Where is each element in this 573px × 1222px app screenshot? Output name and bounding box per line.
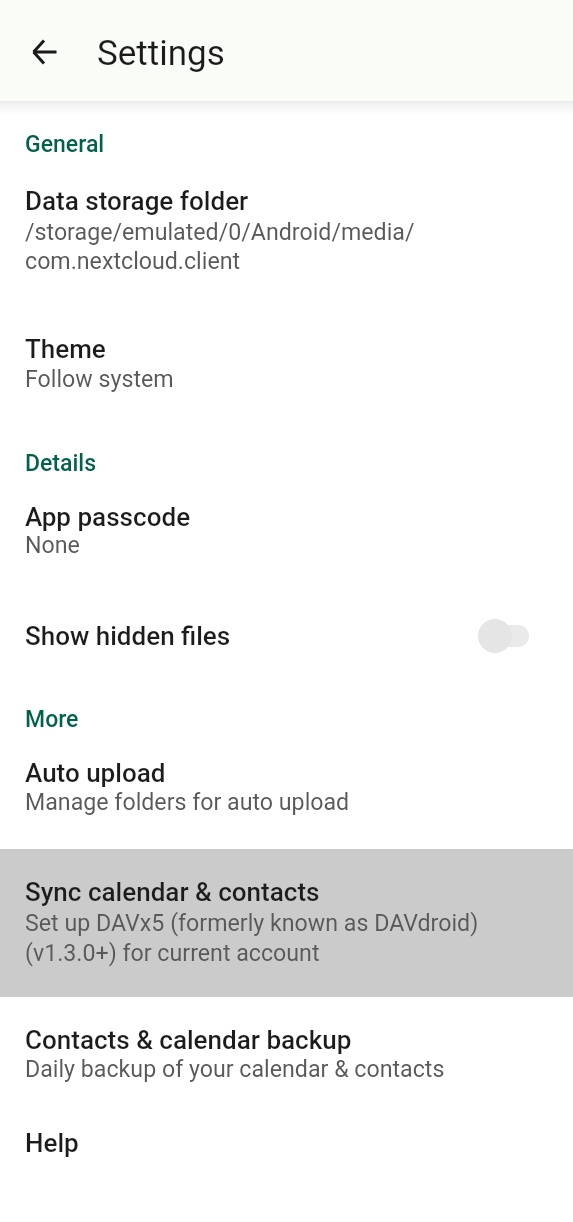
staticText: Show hidden files (25, 621, 231, 651)
staticText: None (25, 531, 80, 558)
button[interactable]: Theme (0, 320, 573, 404)
staticText: More (25, 706, 79, 733)
staticText: Sync calendar & contacts (25, 877, 320, 907)
staticText: com.nextcloud.client (25, 247, 241, 274)
button[interactable]: Show hidden files (0, 600, 573, 690)
staticText: Theme (25, 334, 106, 364)
button[interactable]: Sync calendar and contacts (0, 849, 573, 997)
staticText: General (25, 131, 105, 158)
button[interactable]: Data storage folder (0, 172, 573, 284)
button[interactable]: General section (0, 110, 573, 183)
staticText: (v1.3.0+) for current account (25, 939, 320, 966)
staticText: Auto upload (25, 758, 166, 788)
staticText: Daily backup of your calendar & contacts (25, 1055, 445, 1082)
button[interactable]: Auto upload (0, 746, 573, 828)
staticText: Data storage folder (25, 186, 249, 216)
button[interactable]: More section (0, 692, 573, 746)
button[interactable]: Back (12, 19, 77, 84)
staticText: App passcode (25, 502, 191, 532)
staticText: Follow system (25, 365, 174, 392)
button[interactable]: Details section (0, 436, 573, 488)
button[interactable]: Contacts and calendar backup (0, 1010, 573, 1094)
button[interactable]: Show hidden files toggle (459, 600, 555, 672)
staticText: Help (25, 1128, 79, 1158)
staticText: Contacts & calendar backup (25, 1025, 352, 1055)
button[interactable]: App passcode (0, 488, 573, 570)
staticText: /storage/emulated/0/Android/media/ (25, 218, 415, 245)
staticText: Manage folders for auto upload (25, 788, 350, 815)
button[interactable]: Help (0, 1110, 573, 1190)
staticText: Set up DAVx5 (formerly known as DAVdroid… (25, 909, 479, 936)
staticText: Settings (97, 33, 225, 74)
staticText: Details (25, 450, 97, 477)
